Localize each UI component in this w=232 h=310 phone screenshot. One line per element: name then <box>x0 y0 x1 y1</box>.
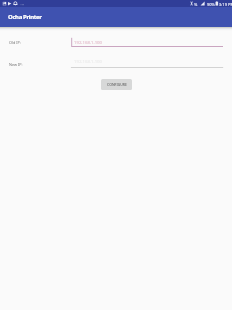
staticText: 192.168.1.100 <box>74 39 103 45</box>
button[interactable]: CONFIGURE <box>101 79 132 90</box>
staticText: 192.168.1.100 <box>74 58 103 64</box>
staticText: New IP: <box>9 62 23 67</box>
staticText: CONFIGURE <box>107 82 127 87</box>
button[interactable]: 192.168.1.100 <box>71 56 223 68</box>
staticText: Old IP: <box>9 40 21 45</box>
button[interactable]: 192.168.1.100 <box>71 35 223 47</box>
staticText: 3:19 PM <box>219 2 232 7</box>
staticText: Ocha Printer <box>8 13 42 21</box>
staticText: 90% <box>207 2 215 7</box>
staticText: % <box>194 2 198 7</box>
